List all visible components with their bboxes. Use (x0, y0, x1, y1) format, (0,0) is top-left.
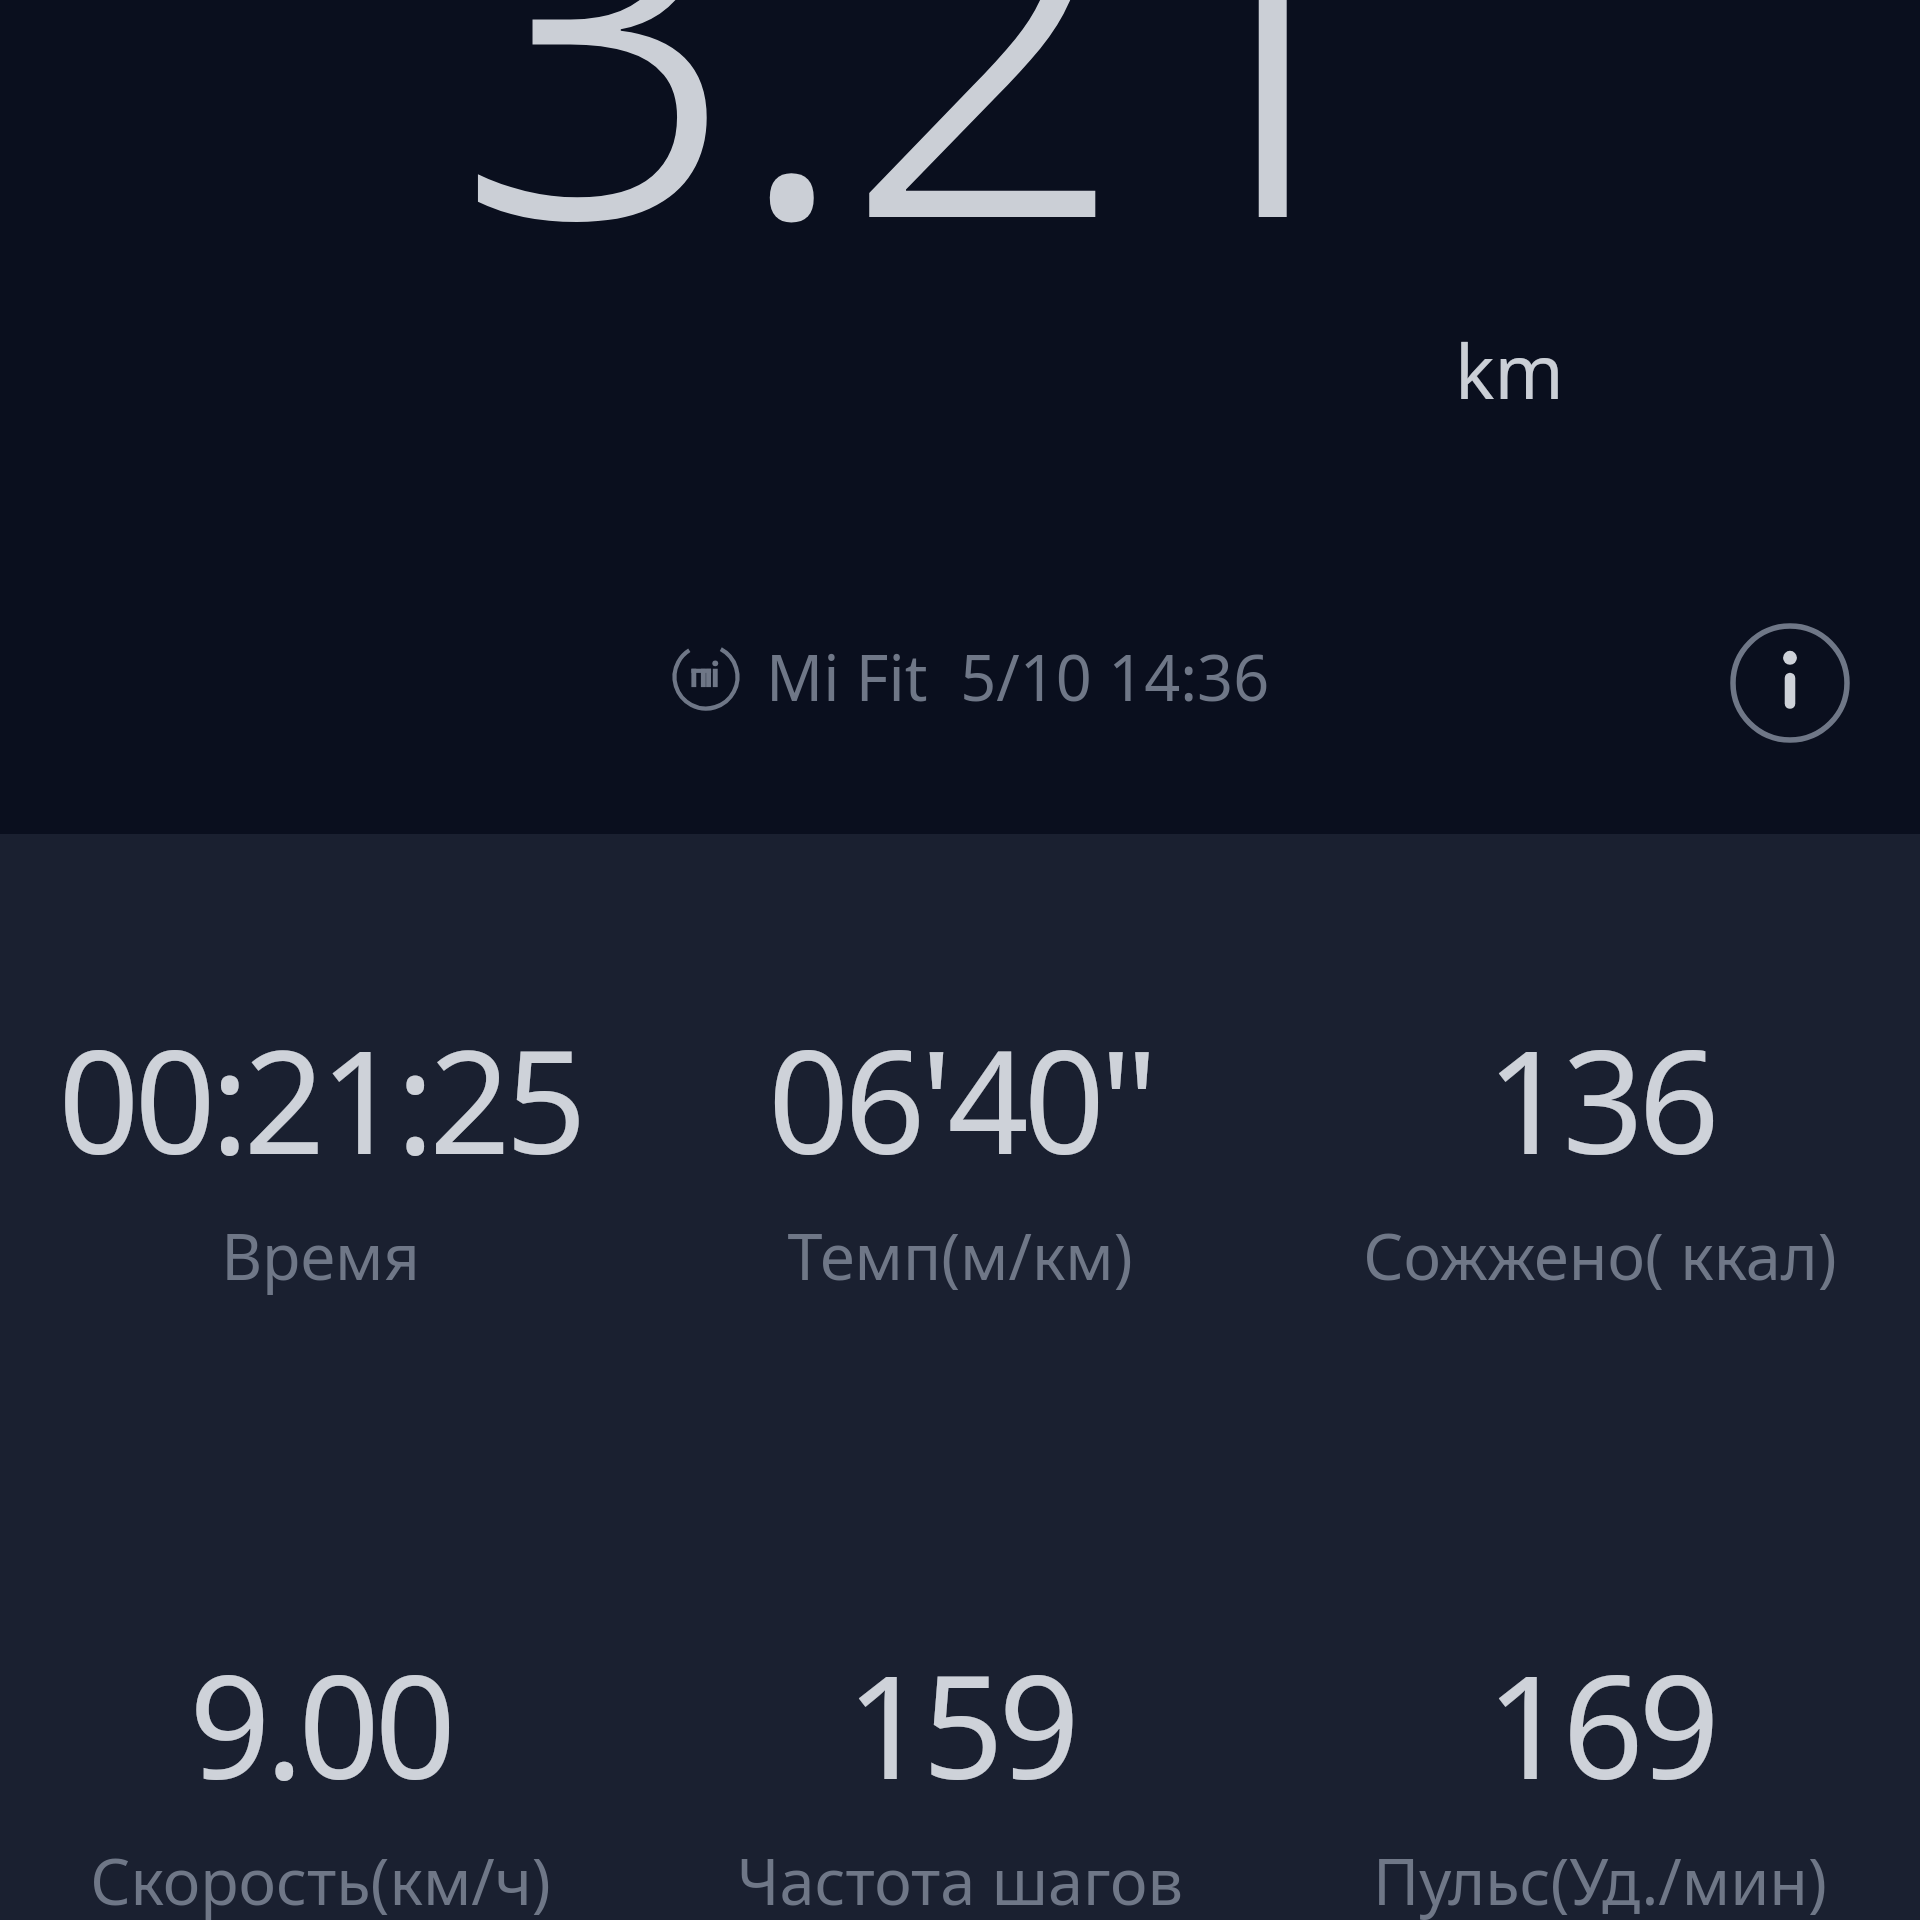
staticText: 159 (846, 1627, 1075, 1820)
staticText: 9.00 (189, 1627, 451, 1820)
button[interactable]: 136 (1280, 1002, 1920, 1299)
staticText: Mi Fit 5/10 14:36 (766, 634, 1270, 720)
staticText: 00:21:25 (58, 1002, 582, 1195)
staticText: 3.21 (455, 0, 1394, 363)
button[interactable]: 06'40" (640, 1002, 1280, 1299)
staticText: Пульс(Уд./мин) (1373, 1838, 1827, 1920)
button[interactable]: Mi Fit 5/10 14:36 (664, 626, 1278, 728)
staticText: 136 (1486, 1002, 1715, 1195)
button[interactable]: 9.00 (0, 1627, 640, 1920)
staticText: Частота шагов (шаг/м) (737, 1838, 1183, 1920)
staticText: Сожжено( ккал) (1363, 1213, 1837, 1299)
button[interactable]: 00:21:25 (0, 1002, 640, 1299)
staticText: Скорость(км/ч) (90, 1838, 551, 1920)
staticText: Темп(м/км) (787, 1213, 1133, 1299)
staticText: 06'40" (768, 1002, 1153, 1195)
button[interactable]: Workout information (1716, 609, 1864, 757)
staticText: km (1455, 320, 1564, 421)
staticText: 169 (1486, 1627, 1715, 1820)
staticText: Время (221, 1213, 420, 1299)
button[interactable]: 169 (1280, 1627, 1920, 1920)
button[interactable]: 159 (640, 1627, 1280, 1920)
